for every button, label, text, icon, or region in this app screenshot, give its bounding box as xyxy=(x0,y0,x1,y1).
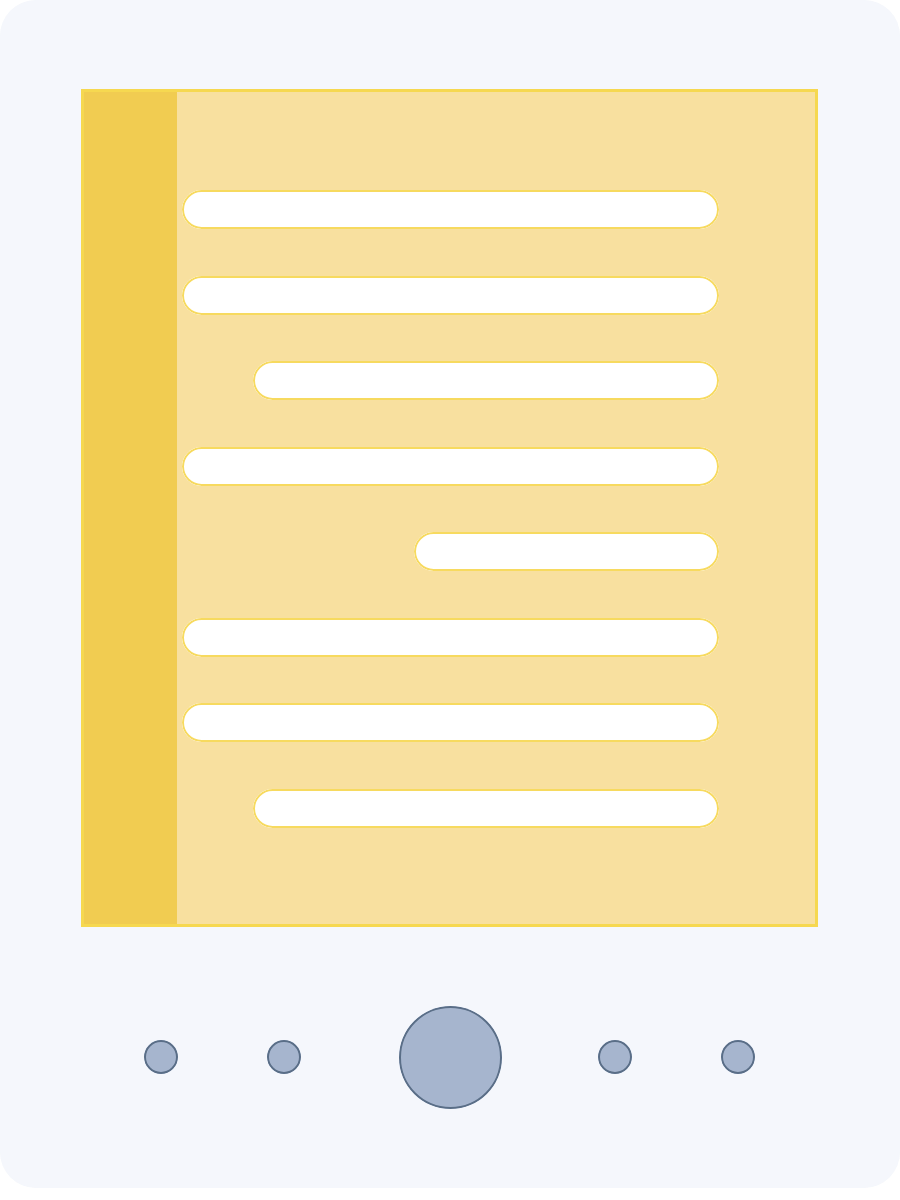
button[interactable]: Read xyxy=(399,1006,502,1109)
button[interactable]: Library xyxy=(144,1040,178,1074)
button[interactable]: Text line 8 xyxy=(253,789,719,828)
button[interactable]: Search xyxy=(598,1040,632,1074)
button[interactable]: Settings xyxy=(721,1040,755,1074)
button[interactable]: Bookmarks xyxy=(267,1040,301,1074)
button[interactable]: Text line 7 xyxy=(182,703,719,742)
button[interactable]: Document page xyxy=(81,89,818,927)
button[interactable]: Text line 2 xyxy=(182,276,719,315)
button[interactable]: Text line 3 xyxy=(253,361,719,400)
button[interactable]: Text line 1 xyxy=(182,190,719,229)
button[interactable]: Text line 6 xyxy=(182,618,719,657)
button[interactable]: Text line 5 xyxy=(414,532,719,571)
button[interactable]: Text line 4 xyxy=(182,447,719,486)
